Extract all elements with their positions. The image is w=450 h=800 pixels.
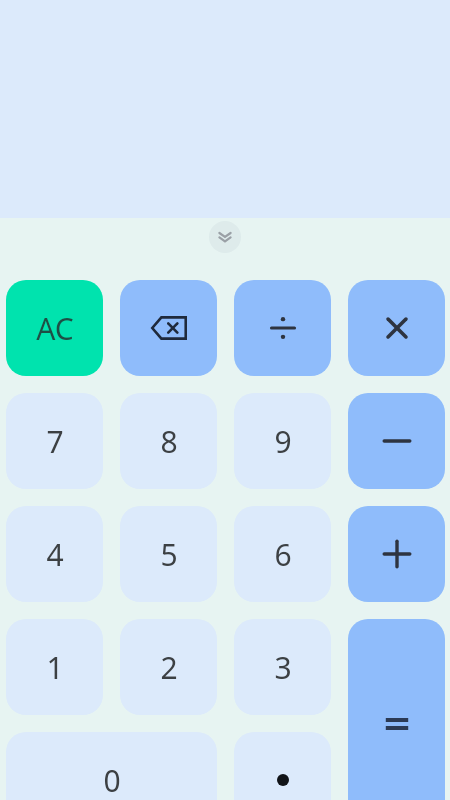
staticText: 4	[46, 534, 64, 575]
button[interactable]: 0	[6, 732, 217, 800]
staticText: 2	[160, 647, 178, 688]
staticText: 9	[274, 421, 292, 462]
button[interactable]: 8	[120, 393, 217, 489]
staticText: 5	[160, 534, 178, 575]
button[interactable]: Plus	[348, 506, 445, 602]
button[interactable]: 7	[6, 393, 103, 489]
button[interactable]: Decimal point	[234, 732, 331, 800]
button[interactable]: Backspace	[120, 280, 217, 376]
staticText: 6	[274, 534, 292, 575]
staticText: AC	[36, 308, 74, 349]
staticText: 3	[274, 647, 292, 688]
button[interactable]: Divide	[234, 280, 331, 376]
button[interactable]: Multiply	[348, 280, 445, 376]
button[interactable]: 4	[6, 506, 103, 602]
button[interactable]: Equals	[348, 619, 445, 800]
button[interactable]: Minus	[348, 393, 445, 489]
button[interactable]: AC	[6, 280, 103, 376]
staticText: 7	[46, 421, 64, 462]
button[interactable]: 2	[120, 619, 217, 715]
button[interactable]: 9	[234, 393, 331, 489]
button[interactable]: Expand history	[209, 221, 241, 253]
button[interactable]: 1	[6, 619, 103, 715]
staticText: 8	[160, 421, 178, 462]
button[interactable]: 5	[120, 506, 217, 602]
button[interactable]: 3	[234, 619, 331, 715]
button[interactable]: 6	[234, 506, 331, 602]
staticText: 1	[46, 647, 64, 688]
staticText: 0	[103, 760, 121, 800]
